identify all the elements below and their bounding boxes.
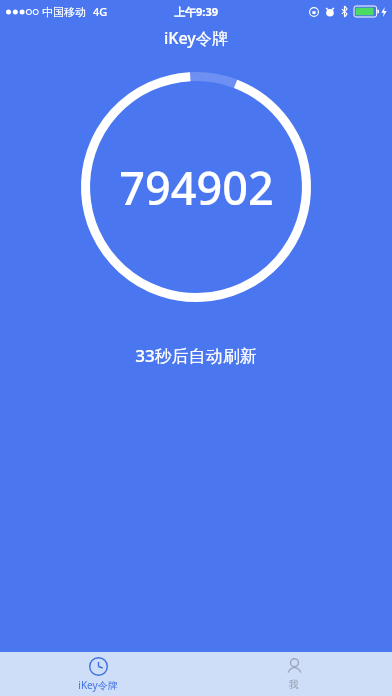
- staticText: iKey令牌: [164, 27, 228, 49]
- other: Me: [285, 657, 304, 676]
- button[interactable]: iKey Token: [0, 652, 196, 696]
- staticText: 中国移动: [42, 5, 86, 19]
- staticText: 794902: [119, 157, 274, 218]
- staticText: 我: [289, 678, 299, 691]
- staticText: 上午9:39: [174, 4, 218, 19]
- staticText: 33秒后自动刷新: [135, 344, 257, 367]
- button[interactable]: Me: [196, 652, 392, 696]
- staticText: iKey令牌: [78, 678, 118, 692]
- other: iKey Token: [89, 657, 108, 676]
- staticText: 4G: [93, 4, 108, 19]
